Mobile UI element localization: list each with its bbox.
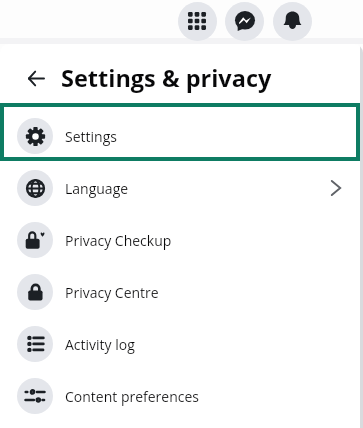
button[interactable]: Privacy Centre [0, 266, 363, 318]
staticText: Activity log [65, 335, 135, 354]
staticText: Settings & privacy [61, 62, 272, 94]
button[interactable]: Activity log [0, 318, 363, 370]
button[interactable]: Back [15, 58, 56, 99]
button[interactable]: Menu [178, 2, 217, 41]
button[interactable]: Notifications [273, 2, 312, 41]
staticText: Settings [65, 127, 117, 146]
button[interactable]: Content preferences [0, 370, 363, 422]
button[interactable]: Messenger [225, 2, 264, 41]
staticText: Privacy Centre [65, 283, 159, 302]
staticText: Privacy Checkup [65, 231, 172, 250]
button[interactable]: Privacy Checkup [0, 214, 363, 266]
staticText: Content preferences [65, 387, 200, 406]
staticText: Language [65, 179, 129, 198]
button[interactable]: Settings [0, 110, 363, 162]
button[interactable]: Language [0, 162, 363, 214]
